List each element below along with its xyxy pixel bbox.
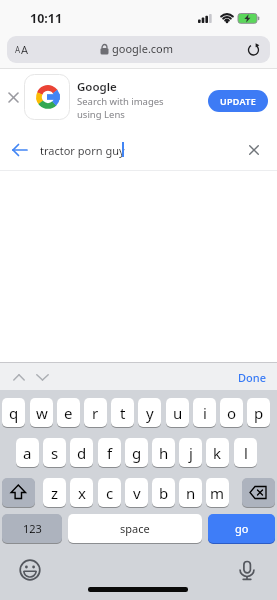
button[interactable]: j: [179, 438, 202, 467]
button[interactable]: [12, 144, 28, 156]
staticText: q: [9, 403, 19, 423]
button[interactable]: UPDATE: [208, 90, 268, 112]
staticText: z: [51, 483, 59, 503]
staticText: space: [120, 521, 150, 536]
button[interactable]: [7, 36, 270, 63]
button[interactable]: e: [57, 398, 80, 427]
button[interactable]: [13, 374, 25, 381]
button[interactable]: b: [152, 478, 175, 507]
button[interactable]: p: [247, 398, 270, 427]
staticText: google.com: [112, 41, 174, 56]
staticText: Done: [238, 370, 266, 385]
staticText: b: [159, 483, 169, 503]
button[interactable]: [247, 43, 260, 56]
staticText: e: [64, 403, 73, 423]
button[interactable]: a: [16, 438, 39, 467]
staticText: g: [132, 443, 142, 463]
button[interactable]: w: [30, 398, 53, 427]
button[interactable]: [36, 374, 49, 381]
button[interactable]: r: [84, 398, 107, 427]
button[interactable]: l: [234, 438, 257, 467]
staticText: using Lens: [77, 108, 125, 121]
button[interactable]: z: [43, 478, 66, 507]
staticText: 10:11: [30, 10, 63, 27]
staticText: m: [210, 483, 225, 503]
staticText: o: [227, 403, 237, 423]
button[interactable]: i: [193, 398, 216, 427]
staticText: y: [146, 403, 154, 423]
button[interactable]: v: [125, 478, 148, 507]
button[interactable]: Done: [234, 368, 270, 386]
button[interactable]: [242, 478, 275, 507]
staticText: tractor porn guy: [40, 143, 125, 158]
button[interactable]: space: [68, 514, 202, 543]
staticText: r: [92, 403, 99, 423]
button[interactable]: m: [206, 478, 229, 507]
button[interactable]: h: [152, 438, 175, 467]
button[interactable]: [2, 478, 35, 507]
staticText: A: [21, 42, 29, 57]
button[interactable]: q: [2, 398, 25, 427]
button[interactable]: [19, 559, 41, 581]
staticText: A: [15, 44, 21, 55]
staticText: t: [120, 403, 126, 423]
staticText: h: [159, 443, 169, 463]
staticText: p: [254, 403, 264, 423]
button[interactable]: [239, 557, 256, 581]
button[interactable]: n: [179, 478, 202, 507]
button[interactable]: s: [43, 438, 66, 467]
staticText: s: [51, 443, 59, 463]
button[interactable]: k: [206, 438, 229, 467]
button[interactable]: x: [70, 478, 93, 507]
staticText: i: [203, 403, 207, 423]
staticText: n: [186, 483, 196, 503]
button[interactable]: u: [166, 398, 189, 427]
staticText: c: [106, 483, 114, 503]
staticText: Search with images: [77, 95, 164, 108]
staticText: d: [77, 443, 87, 463]
button[interactable]: g: [125, 438, 148, 467]
staticText: 123: [23, 521, 42, 536]
staticText: a: [23, 443, 32, 463]
button[interactable]: t: [111, 398, 134, 427]
button[interactable]: 123: [2, 514, 62, 543]
button[interactable]: o: [220, 398, 243, 427]
staticText: UPDATE: [220, 95, 257, 107]
staticText: k: [213, 443, 222, 463]
staticText: u: [173, 403, 183, 423]
button[interactable]: [249, 145, 259, 155]
staticText: w: [36, 403, 48, 423]
button[interactable]: y: [138, 398, 161, 427]
staticText: f: [107, 443, 113, 463]
button[interactable]: f: [98, 438, 121, 467]
staticText: l: [244, 443, 248, 463]
button[interactable]: go: [208, 514, 275, 543]
button[interactable]: c: [98, 478, 121, 507]
staticText: x: [78, 483, 86, 503]
staticText: v: [133, 483, 141, 503]
staticText: go: [235, 521, 249, 536]
staticText: j: [189, 443, 193, 463]
button[interactable]: d: [70, 438, 93, 467]
staticText: Google: [77, 79, 117, 95]
button[interactable]: [8, 92, 19, 103]
